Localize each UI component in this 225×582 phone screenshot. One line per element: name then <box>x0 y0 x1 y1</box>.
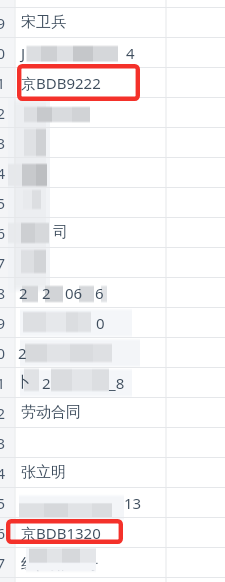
staticText: 25 <box>0 193 6 213</box>
staticText: J <box>21 43 26 63</box>
staticText: 13656183838313 <box>21 493 142 513</box>
button[interactable]: 35 <box>0 493 6 513</box>
button[interactable]: 26 <box>0 223 6 243</box>
button[interactable]: 22 <box>0 103 6 123</box>
button[interactable]: 红江路49号 <box>21 553 99 573</box>
button[interactable]: 13656183838313 <box>21 493 142 513</box>
staticText: 京BDB9222 <box>21 73 101 93</box>
staticText: 22 <box>0 103 6 123</box>
staticText: 司 <box>53 223 68 242</box>
staticText: 24 <box>0 163 6 183</box>
staticText: 4 <box>126 43 135 63</box>
staticText: 34 <box>0 463 6 483</box>
staticText: 0 <box>96 313 105 333</box>
staticText: 30 <box>0 343 6 363</box>
staticText: 卜 <box>16 373 31 392</box>
button[interactable]: 京BDB9222 <box>21 73 101 93</box>
staticText: 红江路49号 <box>21 553 99 573</box>
staticText: 27 <box>0 253 6 273</box>
staticText: 张立明 <box>21 463 66 482</box>
staticText: 6 <box>95 283 104 303</box>
button[interactable]: _8 <box>109 373 125 393</box>
staticText: 2 <box>19 283 28 303</box>
staticText: 37 <box>0 553 6 573</box>
staticText: 19 <box>0 13 6 33</box>
button[interactable]: 2 <box>42 373 51 393</box>
button[interactable]: 30 <box>0 343 6 363</box>
button[interactable]: 2 <box>42 283 51 303</box>
staticText: 21 <box>0 73 6 93</box>
staticText: 28 <box>0 283 6 303</box>
button[interactable]: 卜 <box>16 373 31 392</box>
staticText: 29 <box>0 313 6 333</box>
button[interactable]: 32 <box>0 403 6 423</box>
staticText: _8 <box>109 373 125 393</box>
staticText: 36 <box>0 523 6 543</box>
staticText: 2 <box>42 373 51 393</box>
button[interactable]: 36 <box>0 523 6 543</box>
button[interactable]: 京BDB1320 <box>21 523 101 543</box>
staticText: 2 <box>42 283 51 303</box>
button[interactable]: 24 <box>0 163 6 183</box>
staticText: 06 <box>65 283 83 303</box>
button[interactable]: 2 <box>19 283 28 303</box>
button[interactable]: 29 <box>0 313 6 333</box>
staticText: 宋卫兵 <box>21 13 66 32</box>
button[interactable]: 宋卫兵 <box>21 13 66 32</box>
button[interactable]: 37 <box>0 553 6 573</box>
button[interactable]: 25 <box>0 193 6 213</box>
staticText: 32 <box>0 403 6 423</box>
button[interactable]: 27 <box>0 253 6 273</box>
staticText: 20 <box>0 43 6 63</box>
button[interactable]: 06 <box>65 283 83 303</box>
button[interactable]: 6 <box>95 283 104 303</box>
button[interactable]: 司 <box>53 223 68 242</box>
staticText: 京BDB1320 <box>21 523 101 543</box>
button[interactable]: 23 <box>0 133 6 153</box>
staticText: 26 <box>0 223 6 243</box>
other: Highlighted plate 京BDB9222 <box>17 64 140 101</box>
staticText: 劳动合同 <box>21 403 81 422</box>
staticText: 23 <box>0 133 6 153</box>
button[interactable]: 张立明 <box>21 463 66 482</box>
button[interactable]: 劳动合同 <box>21 403 81 422</box>
button[interactable]: 0 <box>96 313 105 333</box>
button[interactable]: 33 <box>0 433 6 453</box>
staticText: 31 <box>0 373 6 393</box>
button[interactable]: J <box>21 43 26 63</box>
button[interactable]: 20 <box>0 43 6 63</box>
button[interactable]: 34 <box>0 463 6 483</box>
staticText: 35 <box>0 493 6 513</box>
staticText: 2 <box>18 343 27 363</box>
button[interactable]: 4 <box>126 43 135 63</box>
button[interactable]: 28 <box>0 283 6 303</box>
button[interactable]: 2 <box>18 343 27 363</box>
button[interactable]: 19 <box>0 13 6 33</box>
button[interactable]: 31 <box>0 373 6 393</box>
other: Highlighted plate 京BDB1320 <box>6 519 123 544</box>
staticText: 33 <box>0 433 6 453</box>
button[interactable]: 21 <box>0 73 6 93</box>
